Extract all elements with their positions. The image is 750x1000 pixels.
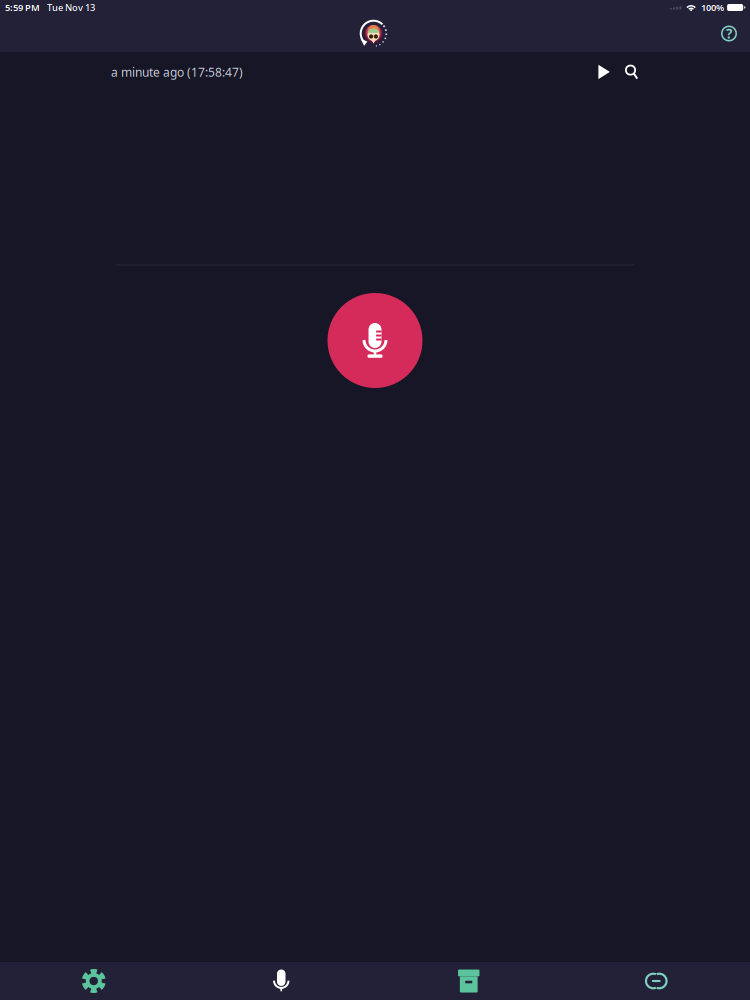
- button[interactable]: Help: [715, 19, 743, 47]
- button[interactable]: Account and sync status: [354, 14, 392, 52]
- button[interactable]: Record: [187, 962, 375, 1000]
- staticText: 5:59 PM: [5, 1, 40, 14]
- button[interactable]: Settings: [0, 962, 187, 1000]
- staticText: 100%: [701, 1, 724, 14]
- button[interactable]: Archive: [375, 962, 562, 1000]
- staticText: a minute ago (17:58:47): [111, 64, 243, 80]
- staticText: Tue Nov 13: [47, 1, 95, 14]
- button[interactable]: Search: [618, 57, 645, 86]
- button[interactable]: Record: [327, 293, 422, 388]
- button[interactable]: Links: [562, 962, 750, 1000]
- button[interactable]: Play: [590, 57, 618, 86]
